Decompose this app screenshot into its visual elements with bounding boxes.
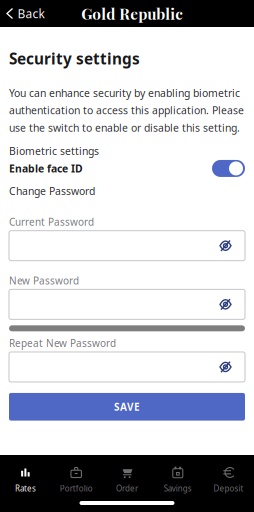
button[interactable]: Enable face ID — [212, 160, 245, 177]
staticText: Current Password — [9, 215, 94, 229]
staticText: New Password — [9, 274, 79, 287]
button[interactable]: Show Repeat New Password — [220, 353, 245, 381]
staticText: Enable face ID — [9, 161, 83, 176]
staticText: SAVE — [114, 400, 140, 414]
button[interactable]: Savings — [152, 467, 203, 494]
staticText: Security settings — [9, 48, 140, 69]
button[interactable]: Order — [102, 467, 152, 494]
button[interactable]: Show Current Password — [220, 232, 245, 260]
button[interactable]: Deposit — [203, 467, 254, 494]
staticText: Order — [116, 483, 138, 494]
button[interactable]: Back — [0, 0, 44, 28]
staticText: Savings — [164, 483, 192, 494]
button[interactable]: SAVE — [9, 393, 245, 421]
staticText: Biometric settings — [9, 144, 99, 158]
staticText: Portfolio — [60, 483, 93, 494]
staticText: Back — [17, 5, 44, 22]
staticText: Repeat New Password — [9, 336, 116, 350]
staticText: Deposit — [214, 483, 244, 494]
button[interactable]: Show New Password — [220, 290, 245, 318]
button[interactable]: Portfolio — [51, 467, 102, 494]
button[interactable]: Rates — [0, 467, 51, 494]
staticText: Gold Republic — [81, 3, 183, 24]
staticText: You can enhance security by enabling bio… — [9, 86, 244, 135]
staticText: Change Password — [9, 184, 95, 198]
staticText: Rates — [15, 483, 36, 494]
